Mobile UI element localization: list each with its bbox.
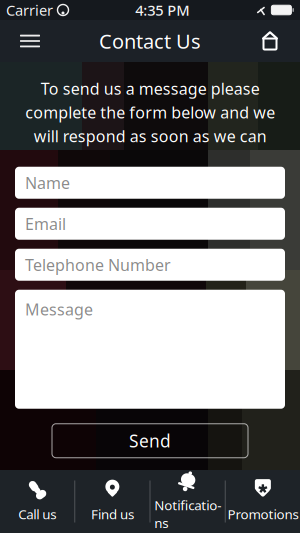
button[interactable]: Telephone Number [15, 249, 285, 281]
staticText: Send [129, 429, 171, 452]
button[interactable]: Home [248, 20, 292, 62]
staticText: Email [25, 213, 66, 234]
staticText: Carrier [6, 0, 53, 20]
staticText: Message [25, 299, 93, 320]
button[interactable]: Notifications [150, 470, 225, 533]
staticText: Notifications [154, 496, 221, 532]
staticText: Contact Us [99, 28, 201, 54]
button[interactable]: Call us [0, 470, 74, 533]
button[interactable]: Menu [8, 20, 52, 62]
button[interactable]: Promotions [226, 470, 300, 533]
button[interactable]: Send [52, 424, 248, 458]
staticText: Find us [91, 505, 134, 523]
button[interactable]: Message [15, 290, 285, 409]
staticText: To send us a message please complete the… [25, 78, 275, 147]
staticText: Name [25, 172, 70, 193]
button[interactable]: Find us [75, 470, 149, 533]
staticText: Promotions [227, 505, 298, 523]
button[interactable]: Email [15, 208, 285, 240]
button[interactable]: Name [15, 167, 285, 199]
staticText: Call us [18, 505, 56, 523]
staticText: 4:35 PM [135, 0, 189, 20]
staticText: Telephone Number [25, 254, 171, 275]
